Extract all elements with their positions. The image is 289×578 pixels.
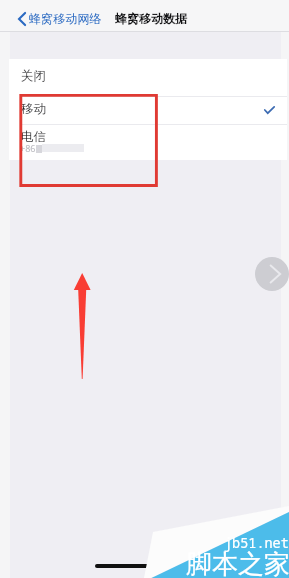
staticText: 移动 bbox=[21, 101, 46, 117]
staticText: 电信 bbox=[21, 129, 46, 145]
staticText: 蜂窝移动网络 bbox=[29, 11, 102, 26]
button[interactable]: Next page bbox=[255, 257, 289, 291]
button[interactable]: 关闭 bbox=[9, 59, 287, 96]
staticText: +86 bbox=[20, 142, 36, 154]
button[interactable]: 电信 bbox=[9, 125, 287, 160]
button[interactable]: 移动 bbox=[9, 97, 287, 124]
staticText: 蜂窝移动数据 bbox=[115, 11, 187, 26]
staticText: 关闭 bbox=[21, 68, 46, 84]
staticText: jb51.net bbox=[224, 534, 289, 552]
staticText: 脚本之家 bbox=[186, 548, 289, 578]
button[interactable]: 蜂窝移动网络 bbox=[18, 9, 102, 24]
